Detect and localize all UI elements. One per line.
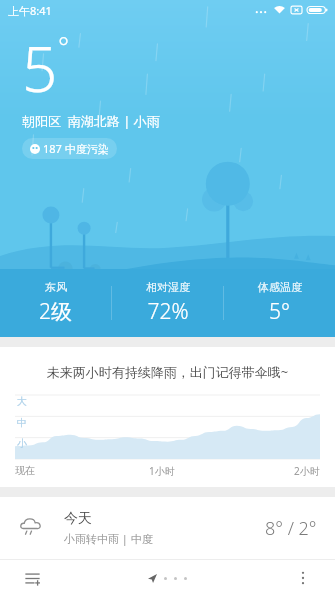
staticText: 朝阳区 南湖北路 | 小雨 <box>22 112 160 130</box>
staticText: 相对湿度 <box>146 280 190 294</box>
staticText: 2级 <box>39 297 72 326</box>
button[interactable]: Add city <box>16 562 48 594</box>
button[interactable]: 今天 <box>0 497 335 559</box>
staticText: 72% <box>147 297 189 326</box>
staticText: 中 <box>17 416 27 429</box>
staticText: 187 中度污染 <box>43 141 109 156</box>
button[interactable]: 体感温度 <box>224 280 335 326</box>
staticText: 东风 <box>45 280 67 294</box>
staticText: 未来两小时有持续降雨，出门记得带伞哦~ <box>0 363 335 381</box>
staticText: 现在 <box>15 464 35 477</box>
staticText: 8° / 2° <box>265 516 317 541</box>
button[interactable]: 相对湿度 <box>112 280 223 326</box>
staticText: 小 <box>17 437 27 450</box>
staticText: 1小时 <box>149 464 175 478</box>
button[interactable]: More options <box>287 562 319 594</box>
button[interactable]: 未来两小时有持续降雨，出门记得带伞哦~ <box>0 347 335 487</box>
staticText: 大 <box>17 395 27 408</box>
staticText: 2小时 <box>294 464 320 478</box>
button[interactable]: 187 中度污染 <box>22 138 117 159</box>
staticText: 上午8:41 <box>8 3 52 18</box>
staticText: 5 <box>22 26 58 110</box>
button[interactable]: 东风 <box>0 280 111 326</box>
staticText: 今天 <box>64 510 92 528</box>
staticText: 体感温度 <box>258 280 302 294</box>
staticText: ° <box>58 28 70 63</box>
staticText: 5° <box>269 297 290 326</box>
staticText: 小雨转中雨 | 中度 <box>64 531 153 546</box>
